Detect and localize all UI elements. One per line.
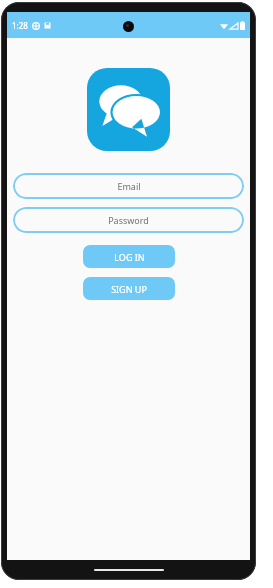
staticText: Email	[117, 180, 141, 192]
staticText: 1:28	[12, 20, 28, 31]
button[interactable]: Email	[13, 173, 244, 199]
staticText: LOG IN	[114, 251, 145, 263]
button[interactable]: LOG IN	[83, 245, 175, 268]
button[interactable]: Password	[13, 207, 244, 233]
button[interactable]: SIGN UP	[83, 277, 175, 300]
staticText: Password	[108, 214, 149, 226]
staticText: SIGN UP	[111, 283, 147, 295]
